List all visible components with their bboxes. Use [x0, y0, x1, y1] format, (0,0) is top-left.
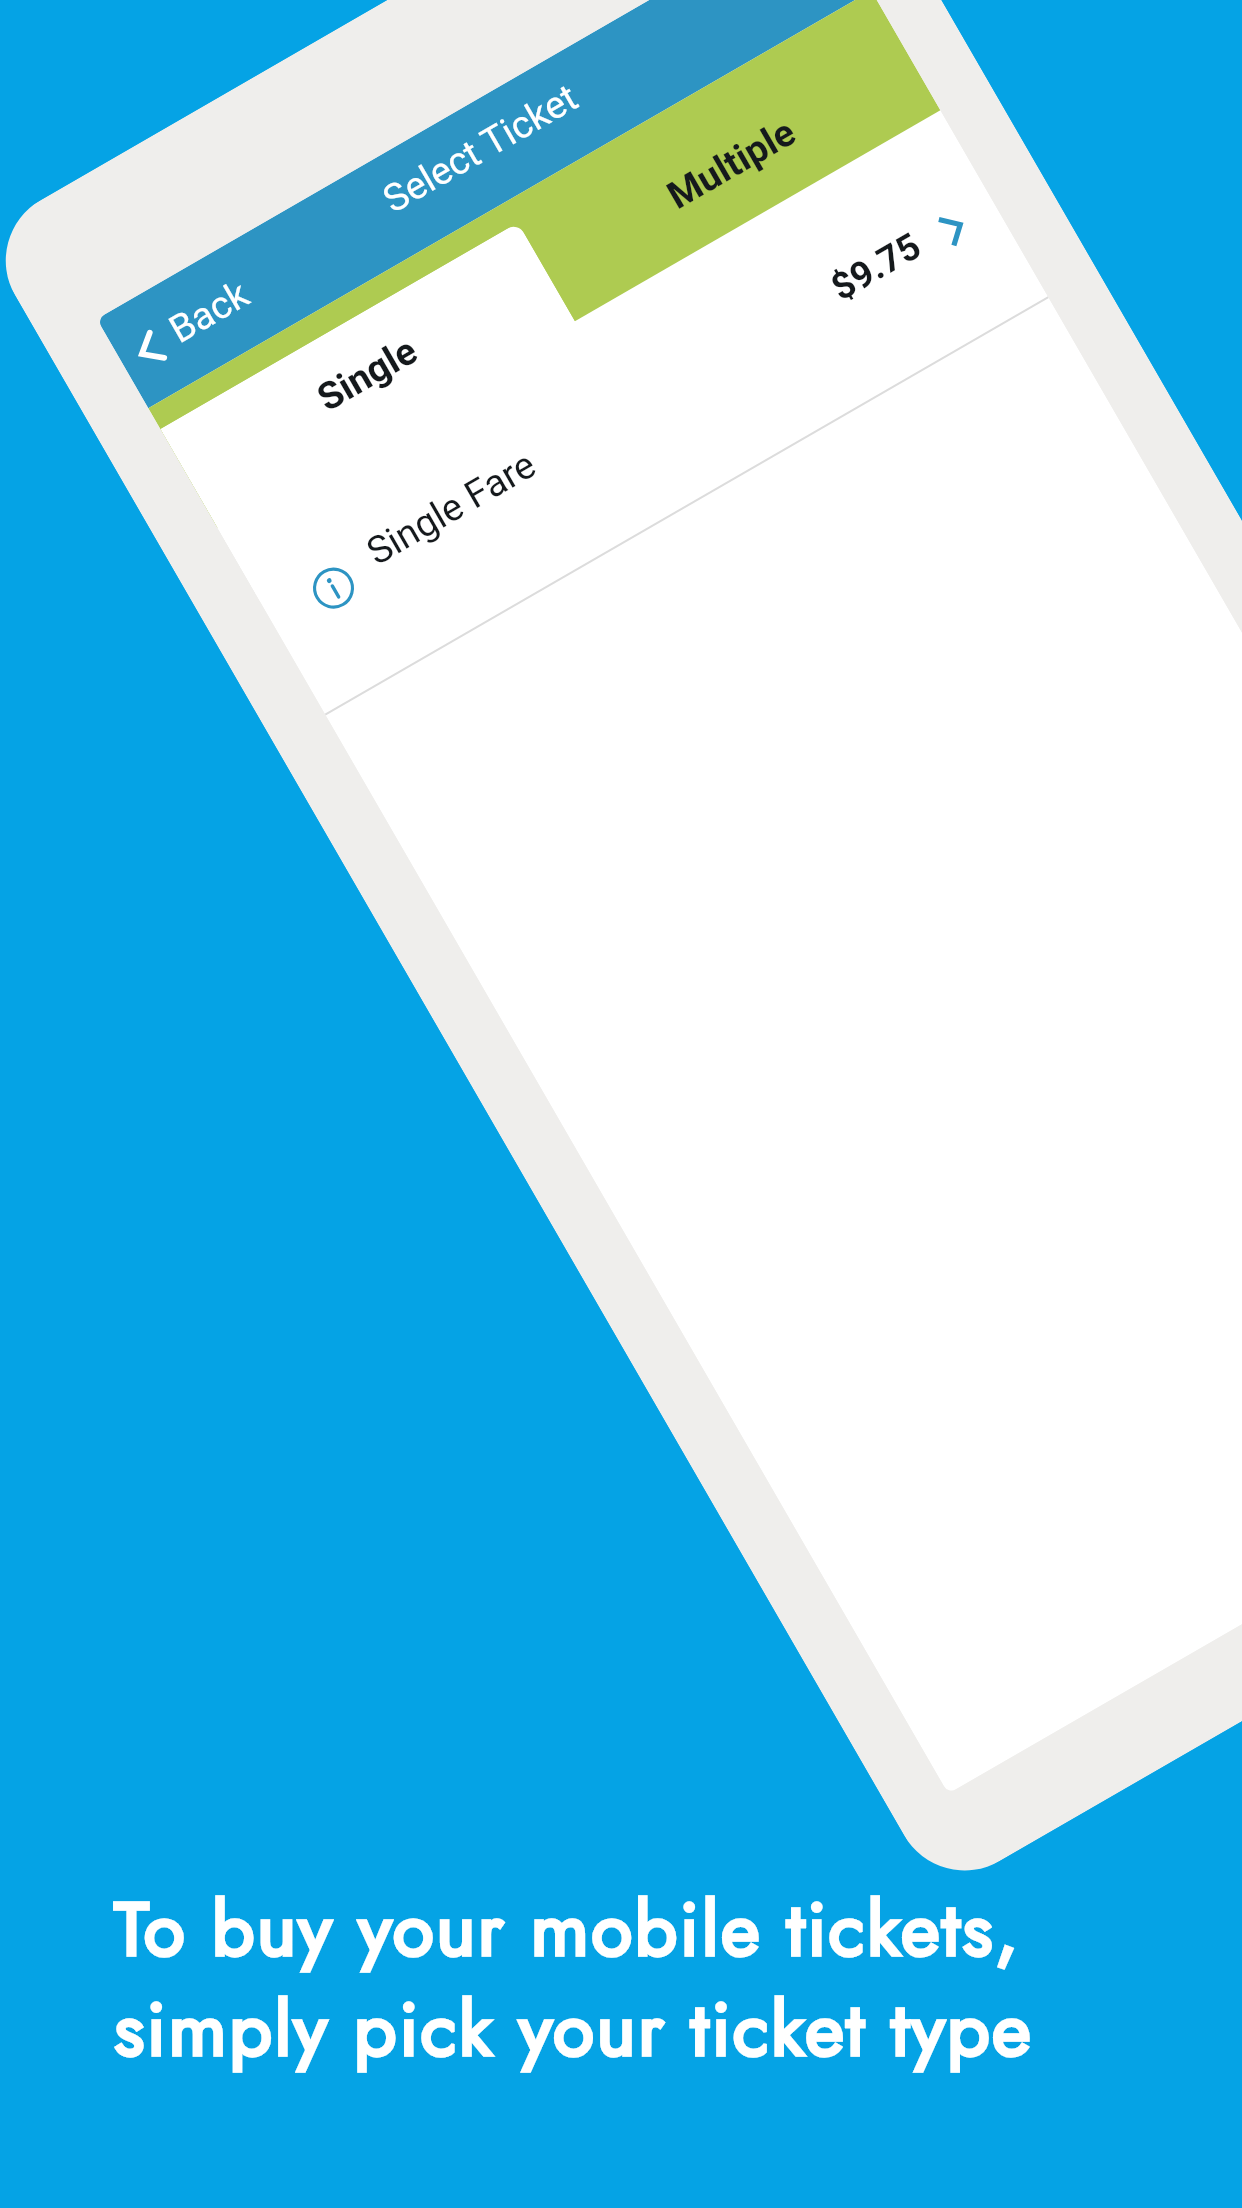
button[interactable] — [506, 0, 940, 321]
button[interactable] — [217, 110, 1048, 714]
staticText: Back — [162, 272, 257, 353]
staticText: Single Fare — [359, 442, 544, 575]
staticText: simply pick your ticket type — [114, 1975, 1033, 2083]
staticText: To buy your mobile tickets, — [114, 1875, 1021, 1983]
staticText: Multiple — [537, 41, 923, 289]
staticText: To buy your mobile tickets, — [114, 1875, 1021, 1983]
staticText: $9.75 — [824, 224, 928, 309]
staticText: Single — [177, 252, 557, 497]
staticText: Select Ticket — [108, 0, 853, 377]
button[interactable] — [160, 222, 618, 602]
button[interactable] — [106, 244, 298, 397]
staticText: simply pick your ticket type — [114, 1975, 1033, 2083]
